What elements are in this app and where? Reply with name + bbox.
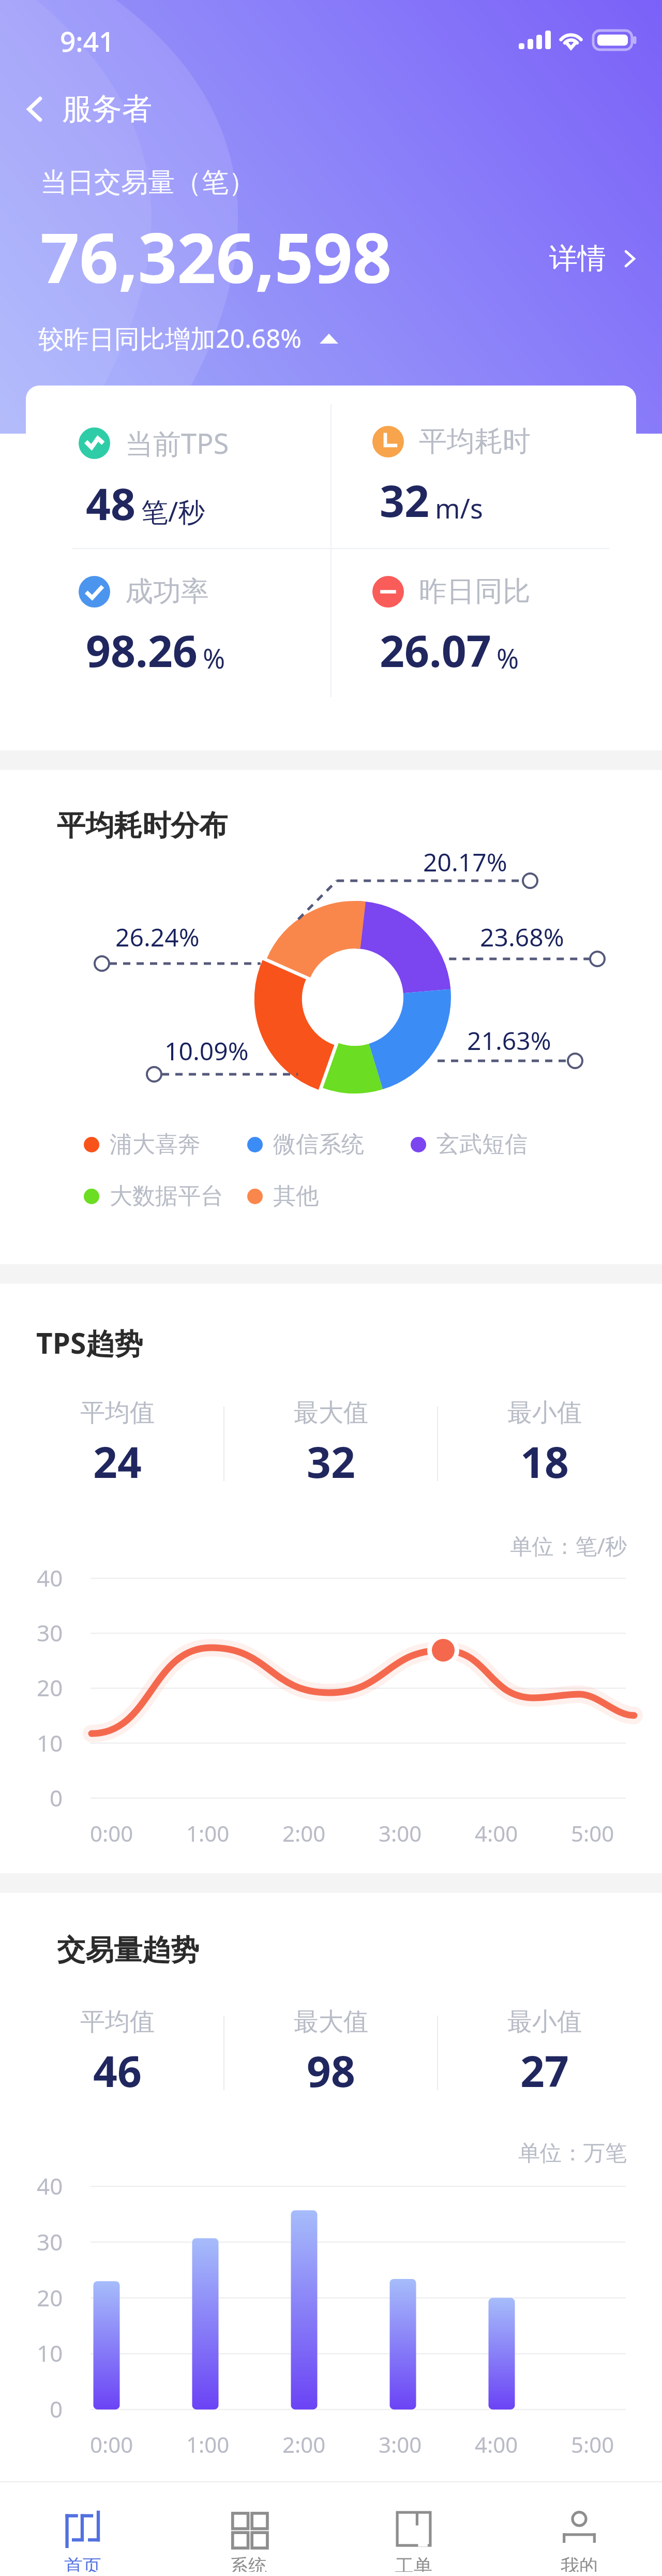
staticText: 21.63% <box>467 1024 551 1057</box>
staticText: 玄武短信 <box>437 1130 528 1159</box>
staticText: 最小值 <box>507 2006 582 2037</box>
staticText: 40 <box>37 1562 63 1593</box>
staticText: 大数据平台 <box>110 1182 223 1210</box>
button[interactable]: 详情 <box>549 241 641 276</box>
staticText: 系统 <box>230 2554 267 2572</box>
button[interactable]: 首页 <box>0 2482 165 2572</box>
button[interactable]: 最大值 <box>224 2006 437 2099</box>
button[interactable]: 工单 <box>331 2482 496 2572</box>
button[interactable]: 最小值 <box>438 1397 651 1490</box>
button[interactable]: 大数据平台 <box>84 1182 247 1210</box>
staticText: 交易量趋势 <box>57 1932 199 1968</box>
staticText: 26.07 <box>380 620 491 679</box>
staticText: 1:00 <box>186 2430 230 2459</box>
staticText: 3:00 <box>379 1818 422 1848</box>
button[interactable]: 当前TPS <box>26 386 331 549</box>
staticText: % <box>203 640 225 676</box>
button[interactable]: 最大值 <box>224 1397 437 1490</box>
other: Back <box>19 93 52 126</box>
staticText: 2:00 <box>282 2430 326 2459</box>
staticText: 单位：万笔 <box>0 2140 627 2167</box>
button[interactable]: 昨日同比 <box>331 549 636 716</box>
staticText: 最小值 <box>507 1397 582 1428</box>
staticText: 昨日同比 <box>419 574 531 609</box>
button[interactable]: 浦大喜奔 <box>84 1130 247 1159</box>
staticText: 23.68% <box>480 920 564 954</box>
staticText: 10 <box>37 1727 63 1758</box>
staticText: 平均耗时 <box>419 424 531 459</box>
staticText: TPS趋势 <box>36 1323 143 1362</box>
staticText: 20 <box>37 2282 63 2313</box>
staticText: 4:00 <box>475 2430 518 2459</box>
staticText: 工单 <box>395 2554 432 2572</box>
button[interactable]: 我的 <box>496 2482 662 2572</box>
staticText: 2:00 <box>282 1818 326 1848</box>
staticText: 98.26 <box>86 620 198 679</box>
staticText: 平均值 <box>80 1397 155 1428</box>
staticText: 24 <box>93 1432 142 1490</box>
staticText: 成功率 <box>125 574 209 609</box>
staticText: 20 <box>37 1672 63 1703</box>
staticText: 5:00 <box>571 1818 614 1848</box>
button[interactable]: 系统 <box>165 2482 331 2572</box>
staticText: 我的 <box>561 2554 598 2572</box>
staticText: 0 <box>50 2393 63 2424</box>
staticText: 最大值 <box>294 2006 368 2037</box>
staticText: 4:00 <box>475 1818 518 1848</box>
staticText: 微信系统 <box>273 1130 364 1159</box>
staticText: 10 <box>37 2337 63 2368</box>
staticText: 10.09% <box>164 1034 249 1068</box>
staticText: 46 <box>93 2041 142 2099</box>
button[interactable]: Back <box>19 90 152 128</box>
button[interactable]: 其他 <box>247 1182 411 1210</box>
staticText: 详情 <box>549 241 606 276</box>
staticText: 较昨日同比增加20.68% <box>38 321 302 356</box>
staticText: 30 <box>37 1617 63 1648</box>
staticText: 76,326,598 <box>40 210 392 303</box>
button[interactable]: 最小值 <box>438 2006 651 2099</box>
staticText: 5:00 <box>571 2430 614 2459</box>
staticText: 其他 <box>273 1182 319 1210</box>
staticText: 27 <box>520 2041 569 2099</box>
staticText: 1:00 <box>186 1818 230 1848</box>
staticText: 0 <box>50 1782 63 1813</box>
staticText: 平均值 <box>80 2006 155 2037</box>
staticText: 32 <box>380 470 430 529</box>
button[interactable]: 平均值 <box>11 2006 223 2099</box>
staticText: 笔/秒 <box>141 493 205 529</box>
staticText: 40 <box>37 2170 63 2201</box>
button[interactable]: 平均耗时 <box>331 386 636 549</box>
staticText: 首页 <box>64 2554 101 2572</box>
staticText: 服务者 <box>62 90 152 128</box>
staticText: 0:00 <box>90 1818 133 1848</box>
staticText: 20.17% <box>423 845 507 879</box>
staticText: 单位：笔/秒 <box>0 1531 627 1560</box>
staticText: 浦大喜奔 <box>110 1130 201 1159</box>
button[interactable]: 玄武短信 <box>411 1130 574 1159</box>
staticText: % <box>496 640 519 676</box>
button[interactable]: 平均值 <box>11 1397 223 1490</box>
staticText: 当日交易量（笔） <box>40 166 255 200</box>
staticText: 平均耗时分布 <box>57 808 228 843</box>
staticText: 0:00 <box>90 2430 133 2459</box>
staticText: 26.24% <box>115 920 200 954</box>
staticText: 30 <box>37 2226 63 2257</box>
staticText: 当前TPS <box>125 424 229 462</box>
staticText: 最大值 <box>294 1397 368 1428</box>
staticText: 32 <box>307 1432 355 1490</box>
staticText: 98 <box>307 2041 355 2099</box>
staticText: m/s <box>435 490 483 526</box>
button[interactable]: 微信系统 <box>247 1130 411 1159</box>
button[interactable]: 成功率 <box>26 549 331 716</box>
staticText: 18 <box>520 1432 569 1490</box>
staticText: 48 <box>86 473 136 532</box>
staticText: 3:00 <box>379 2430 422 2459</box>
staticText: 9:41 <box>60 22 115 60</box>
